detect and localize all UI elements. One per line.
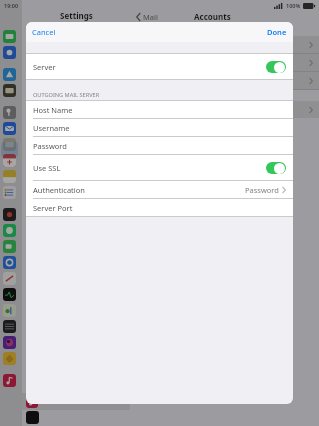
button[interactable]: App icon — [3, 154, 16, 167]
button[interactable]: Toggle — [266, 162, 286, 174]
staticText: Accounts — [194, 11, 231, 22]
staticText: Host Name — [33, 105, 73, 115]
button[interactable]: App icon — [3, 68, 16, 81]
staticText: Password — [245, 185, 279, 195]
staticText: Done — [267, 27, 287, 37]
button[interactable]: Done — [267, 22, 287, 42]
staticText: Settings — [60, 10, 93, 21]
button[interactable] — [130, 54, 313, 71]
button[interactable]: App icon — [3, 240, 16, 253]
button[interactable]: Music — [26, 393, 130, 410]
button[interactable]: App icon — [3, 272, 16, 285]
staticText: Server Port — [33, 203, 73, 213]
staticText: Password — [33, 141, 67, 151]
button[interactable]: Password — [26, 137, 293, 154]
button[interactable]: App icon — [3, 46, 16, 59]
button[interactable]: App icon — [3, 138, 16, 151]
button[interactable]: App icon — [3, 122, 16, 135]
button[interactable]: App icon — [3, 208, 16, 221]
button[interactable]: App icon — [3, 30, 16, 43]
staticText: Music — [43, 397, 63, 407]
staticText: Server — [33, 62, 56, 72]
button[interactable]: Server Port — [26, 199, 293, 216]
button[interactable] — [130, 36, 313, 53]
button[interactable]: App icon — [3, 84, 16, 97]
button[interactable]: Toggle — [266, 61, 286, 73]
button[interactable]: App icon — [3, 170, 16, 183]
other: Back — [136, 13, 141, 21]
button[interactable]: App icon — [3, 256, 16, 269]
button[interactable] — [130, 72, 313, 89]
staticText: 19:00 — [4, 2, 19, 9]
staticText: 100% — [286, 2, 301, 9]
staticText: Mail — [143, 12, 158, 22]
button[interactable]: Cancel — [32, 22, 56, 42]
button[interactable]: Host Name — [26, 101, 293, 118]
button[interactable]: Use SSL — [26, 155, 293, 180]
button[interactable]: Authentication — [26, 181, 293, 198]
button[interactable]: Server — [26, 54, 293, 79]
button[interactable]: App icon — [3, 374, 16, 387]
button[interactable]: App icon — [3, 352, 16, 365]
button[interactable]: App icon — [3, 336, 16, 349]
staticText: Use SSL — [33, 163, 61, 173]
staticText: Authentication — [33, 185, 85, 195]
button[interactable]: App icon — [3, 106, 16, 119]
staticText: Username — [33, 123, 70, 133]
button[interactable]: App icon — [3, 304, 16, 317]
button[interactable]: App icon — [3, 320, 16, 333]
button[interactable]: App icon — [3, 288, 16, 301]
button[interactable]: App icon — [3, 186, 16, 199]
button[interactable]: App icon — [3, 224, 16, 237]
staticText: Cancel — [32, 27, 56, 37]
button[interactable]: Username — [26, 119, 293, 136]
button[interactable] — [130, 101, 313, 118]
staticText: OUTGOING MAIL SERVER — [33, 91, 100, 99]
